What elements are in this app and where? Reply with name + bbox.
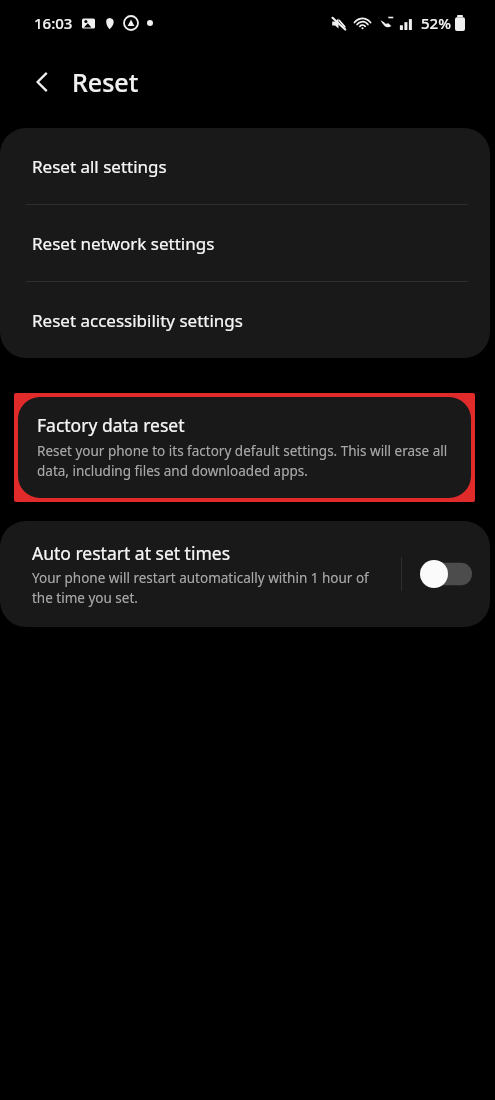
button[interactable]: Reset network settings [0,205,490,281]
button[interactable]: Reset all settings [0,128,490,204]
staticText: Factory data reset [37,413,185,437]
staticText: Reset all settings [32,155,167,178]
staticText: Reset [72,65,139,99]
staticText: Reset your phone to its factory default … [37,442,451,480]
staticText: 16:03 [34,13,73,33]
staticText: Auto restart at set times [32,541,231,565]
staticText: Reset accessibility settings [32,309,243,332]
staticText: Reset network settings [32,232,215,255]
button[interactable]: Auto restart at set times [0,541,401,607]
staticText: Your phone will restart automatically wi… [32,569,391,607]
button[interactable]: Reset accessibility settings [0,282,490,358]
button[interactable]: Back [18,58,66,106]
staticText: 52% [421,13,451,33]
button[interactable]: Auto restart toggle [402,521,490,627]
button[interactable]: Factory data reset [18,397,471,498]
